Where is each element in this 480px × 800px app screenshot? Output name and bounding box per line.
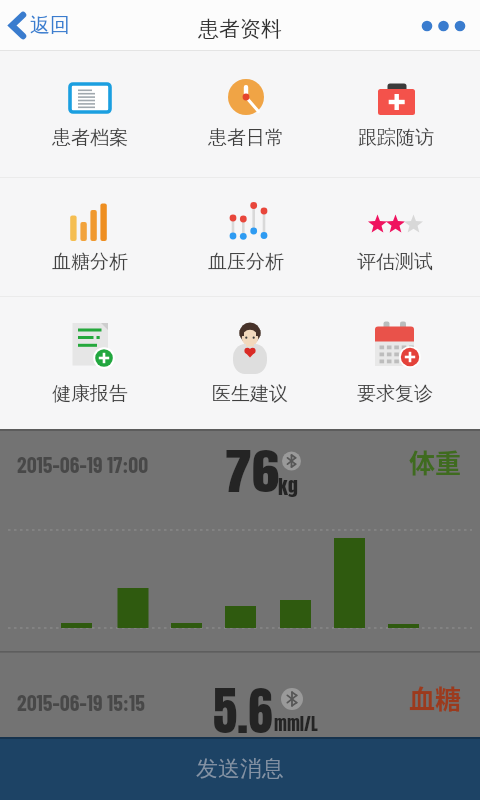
- staticText: 2015-06-19 17:00: [17, 451, 149, 477]
- button[interactable]: [0, 653, 480, 737]
- staticText: 医生建议: [212, 382, 288, 406]
- staticText: 要求复诊: [357, 382, 433, 406]
- staticText: 血糖分析: [52, 250, 128, 274]
- button[interactable]: 返回: [0, 0, 90, 50]
- staticText: 跟踪随访: [358, 126, 434, 150]
- staticText: 患者日常: [208, 126, 284, 150]
- staticText: 血糖: [409, 679, 462, 717]
- button[interactable]: [172, 296, 328, 400]
- button[interactable]: [12, 296, 168, 400]
- button[interactable]: [410, 0, 480, 50]
- staticText: mml/L: [274, 711, 318, 737]
- button[interactable]: [12, 50, 168, 154]
- staticText: 患者资料: [198, 16, 282, 42]
- button[interactable]: [317, 296, 473, 400]
- button[interactable]: [12, 174, 168, 278]
- staticText: 76: [224, 436, 280, 508]
- staticText: 健康报告: [52, 382, 128, 406]
- button[interactable]: [318, 51, 474, 155]
- staticText: 返回: [30, 13, 70, 38]
- button[interactable]: 发送消息: [0, 737, 480, 800]
- button[interactable]: [0, 431, 480, 530]
- staticText: 血压分析: [208, 250, 284, 274]
- button[interactable]: [168, 173, 324, 277]
- staticText: 2015-06-19 15:15: [17, 689, 145, 715]
- staticText: 评估测试: [357, 250, 433, 274]
- button[interactable]: [317, 177, 473, 281]
- button[interactable]: [168, 49, 324, 153]
- staticText: 患者档案: [52, 126, 128, 150]
- staticText: 发送消息: [196, 755, 284, 783]
- staticText: 5.6: [213, 672, 273, 750]
- staticText: kg: [278, 471, 298, 501]
- staticText: 体重: [409, 443, 462, 481]
